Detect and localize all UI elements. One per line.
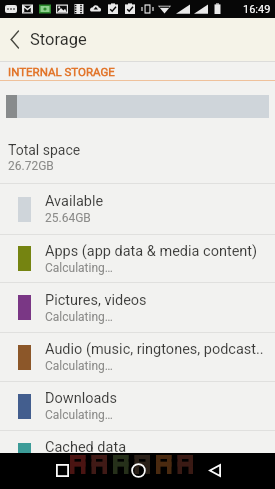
button[interactable]: Cached data: [0, 430, 275, 453]
staticText: Apps (app data & media content): [45, 243, 258, 260]
staticText: Available: [45, 193, 104, 210]
staticText: 25.64GB: [45, 211, 91, 225]
staticText: Audio (music, ringtones, podcast..: [45, 341, 264, 358]
staticText: Pictures, videos: [45, 292, 147, 309]
button[interactable]: Downloads: [0, 381, 275, 430]
button[interactable]: Back: [195, 453, 235, 487]
staticText: 16:49: [243, 3, 271, 16]
button[interactable]: Recent apps: [42, 453, 82, 487]
staticText: INTERNAL STORAGE: [8, 65, 115, 78]
button[interactable]: Apps (app data & media content): [0, 234, 275, 282]
staticText: Cached data: [45, 439, 127, 453]
staticText: Downloads: [45, 390, 118, 407]
staticText: Storage: [30, 30, 87, 49]
staticText: Calculating…: [45, 408, 113, 422]
button[interactable]: Back: [0, 18, 30, 61]
staticText: Calculating…: [45, 359, 113, 373]
staticText: Calculating…: [45, 310, 113, 324]
button[interactable]: Available: [0, 183, 275, 234]
staticText: Calculating…: [45, 261, 113, 275]
button[interactable]: Home: [118, 453, 158, 487]
staticText: Total space: [8, 142, 81, 158]
button[interactable]: Audio (music, ringtones, podcast..: [0, 332, 275, 381]
staticText: 26.72GB: [8, 159, 54, 173]
button[interactable]: Pictures, videos: [0, 282, 275, 332]
